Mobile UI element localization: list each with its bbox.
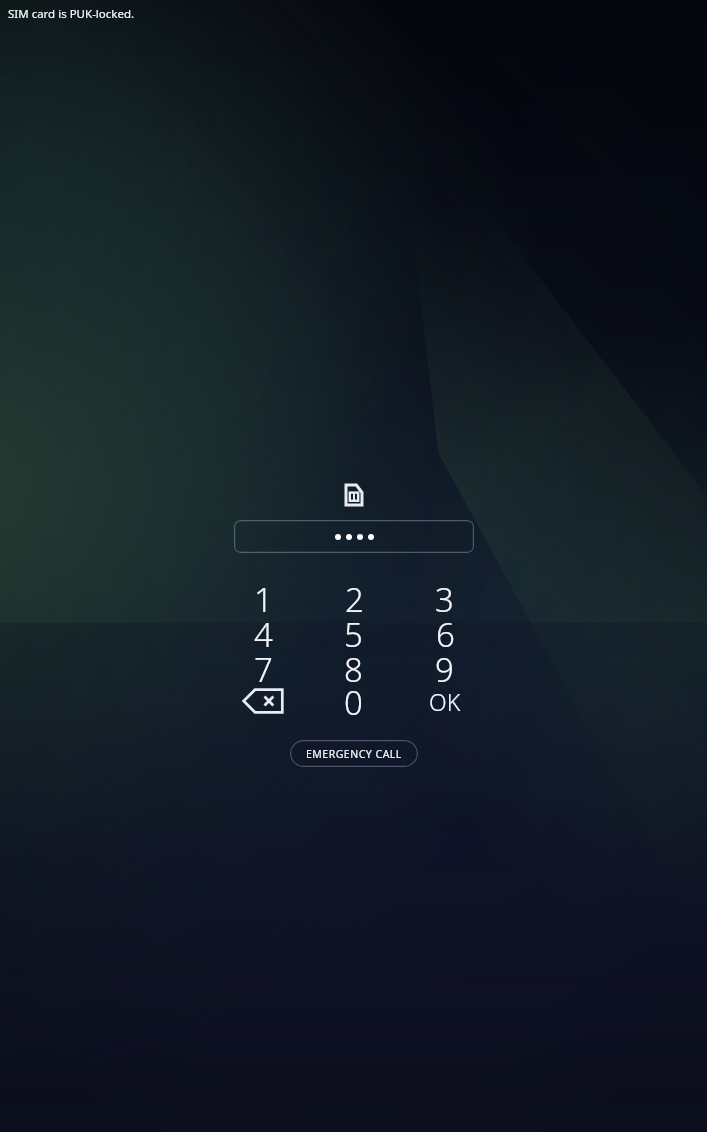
staticText: SIM card is PUK-locked. (8, 6, 135, 22)
button[interactable]: 9 (399, 647, 490, 682)
staticText: 3 (435, 577, 454, 612)
staticText: 7 (254, 647, 273, 682)
button[interactable]: 5 (308, 612, 399, 647)
staticText: 6 (436, 612, 455, 647)
button[interactable]: 8 (308, 647, 399, 682)
staticText: 1 (254, 577, 273, 612)
staticText: 2 (345, 577, 364, 612)
button[interactable]: OK (399, 682, 490, 724)
staticText: 0 (344, 680, 363, 722)
staticText: 9 (435, 647, 454, 682)
button[interactable]: 7 (218, 647, 308, 682)
staticText: 8 (344, 647, 363, 682)
button[interactable]: 4 (218, 612, 308, 647)
button[interactable]: EMERGENCY CALL (290, 740, 418, 767)
button[interactable]: 6 (399, 612, 490, 647)
staticText: 4 (254, 612, 273, 647)
button[interactable]: 0 (308, 682, 399, 724)
button[interactable]: 3 (399, 577, 490, 612)
button[interactable]: 1 (218, 577, 308, 612)
staticText: OK (429, 686, 461, 717)
staticText: EMERGENCY CALL (306, 747, 402, 761)
button[interactable]: 2 (308, 577, 399, 612)
button[interactable]: Delete (218, 682, 308, 724)
button[interactable] (234, 520, 474, 553)
staticText: 5 (344, 612, 363, 647)
